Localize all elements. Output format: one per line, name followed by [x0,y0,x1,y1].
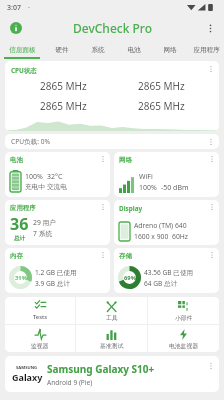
button[interactable]: Card menu [206,249,218,261]
staticText: CPU负载: 0% [11,137,50,146]
button[interactable]: 网络 [114,152,219,197]
staticText: Android 9 (Pie) [47,378,93,387]
button[interactable]: Card menu [206,153,218,165]
button[interactable]: 存储 [114,248,219,293]
staticText: 1600 x 900 [134,232,169,241]
staticText: 电池 [127,46,141,54]
staticText: CPU状态 [11,66,37,75]
button[interactable]: Info [6,18,26,38]
staticText: 60Hz [172,232,189,241]
button[interactable]: 硬件 [44,40,80,59]
staticText: 64 GB 总计 [144,279,178,288]
staticText: 2865 MHz [138,79,185,93]
button[interactable]: Card menu [97,201,109,213]
staticText: 29 用户 [33,218,57,227]
staticText: 43.56 GB 已使用 [144,268,194,277]
button[interactable]: Card menu [205,63,217,75]
staticText: 应用程序 [10,204,36,212]
button[interactable]: 网络 [152,40,188,59]
staticText: 总计 [14,235,26,242]
staticText: 监视器 [31,342,49,349]
button[interactable]: 电池 [116,40,152,59]
staticText: 基准测试 [100,342,124,349]
staticText: 31% [15,274,27,282]
staticText: · [28,3,30,13]
staticText: 100% [25,172,43,182]
staticText: 内存 [10,252,23,260]
staticText: Display [119,204,143,213]
button[interactable]: SAMSUNG [5,356,219,392]
staticText: 3:07 [7,3,21,13]
button[interactable]: More options [200,18,220,38]
staticText: 7 系统 [33,229,53,238]
staticText: 69% [124,274,136,282]
button[interactable]: Display [114,200,219,245]
button[interactable]: 应用程序 [188,40,224,59]
staticText: 应用程序 [193,46,220,54]
button[interactable]: 小部件 [148,297,219,324]
staticText: 系统 [91,46,105,54]
staticText: 2865 MHz [40,79,87,93]
staticText: 网络 [119,156,132,164]
staticText: Adreno (TM) 640 [134,221,187,230]
staticText: DevCheck Pro [73,20,152,36]
staticText: 电池 [10,156,23,164]
button[interactable]: 电池 [5,152,110,197]
staticText: 100% [139,183,157,193]
staticText: 交流电 [47,183,67,191]
button[interactable]: 内存 [5,248,110,293]
button[interactable]: 信息面板 [0,40,44,59]
staticText: Tests [33,313,48,321]
staticText: 小部件 [175,314,193,321]
button[interactable]: 应用程序 [5,200,110,245]
staticText: SAMSUNG [16,365,38,371]
staticText: 1.2 GB 已使用 [35,268,77,277]
button[interactable]: Tests [5,297,75,324]
button[interactable]: CPU状态 [5,61,219,131]
staticText: 工具 [106,314,118,321]
staticText: 2865 MHz [40,99,87,113]
staticText: 存储 [119,252,132,260]
staticText: 充电中 [25,183,45,191]
button[interactable]: 系统 [80,40,116,59]
staticText: 信息面板 [9,46,36,54]
button[interactable]: 电池监视器 [148,325,219,352]
staticText: 电池监视器 [169,342,198,349]
staticText: 3.9 GB 总计 [35,279,71,288]
button[interactable]: 工具 [76,297,147,324]
staticText: 2865 MHz [138,99,185,113]
staticText: Galaxy [12,371,43,383]
staticText: WiFi [139,172,153,182]
staticText: 32°C [47,172,63,182]
button[interactable]: 监视器 [5,325,75,352]
staticText: 网络 [163,46,177,54]
button[interactable]: Card menu [97,249,109,261]
button[interactable]: Card menu [206,201,218,213]
button[interactable]: CPU负载: 0% [5,134,219,149]
button[interactable]: Card menu [205,360,217,372]
staticText: 36 [10,213,29,235]
button[interactable]: 基准测试 [76,325,147,352]
button[interactable]: Card menu [205,136,217,148]
staticText: -50 dBm [161,183,189,193]
button[interactable]: Card menu [97,153,109,165]
staticText: 硬件 [55,46,69,54]
staticText: Samsung Galaxy S10+ [47,362,155,376]
